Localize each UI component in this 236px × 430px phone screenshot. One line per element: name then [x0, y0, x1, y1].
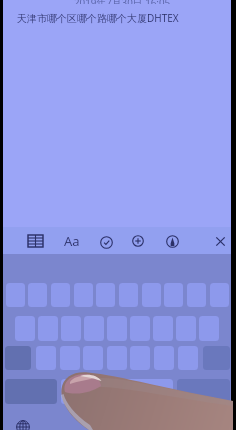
- button[interactable]: Aa: [61, 232, 83, 250]
- button[interactable]: Key: [96, 283, 115, 307]
- button[interactable]: Key: [83, 346, 103, 370]
- button[interactable]: Key: [107, 346, 127, 370]
- button[interactable]: Key: [28, 283, 47, 307]
- button[interactable]: Key: [38, 316, 58, 341]
- button[interactable]: Key: [51, 283, 70, 307]
- button[interactable]: Insert table: [26, 232, 44, 250]
- button[interactable]: Checklist: [97, 233, 115, 251]
- button[interactable]: Key: [210, 283, 229, 307]
- button[interactable]: Key: [6, 283, 25, 307]
- button[interactable]: Key: [154, 346, 174, 370]
- button[interactable]: Draw: [163, 232, 181, 250]
- button[interactable]: Key: [15, 316, 35, 341]
- button[interactable]: Key: [36, 346, 56, 370]
- button[interactable]: Key: [61, 316, 81, 341]
- button[interactable]: Key: [187, 283, 206, 307]
- button[interactable]: Key: [130, 346, 150, 370]
- button[interactable]: Change language: [16, 420, 30, 430]
- staticText: 2019年7月30日 16:05: [74, 0, 171, 4]
- button[interactable]: Key: [84, 316, 104, 341]
- button[interactable]: Key: [164, 283, 183, 307]
- button[interactable]: Key: [153, 316, 173, 341]
- button[interactable]: Key: [74, 283, 93, 307]
- button[interactable]: Key: [130, 316, 150, 341]
- button[interactable]: Enter: [177, 379, 230, 404]
- button[interactable]: Key: [142, 283, 161, 307]
- button[interactable]: Key: [60, 346, 80, 370]
- button[interactable]: Key: [199, 316, 219, 341]
- button[interactable]: Key: [178, 346, 198, 370]
- button[interactable]: Key: [107, 316, 127, 341]
- button[interactable]: Insert attachment: [129, 232, 147, 250]
- button[interactable]: Key: [176, 316, 196, 341]
- button[interactable]: Key: [119, 283, 138, 307]
- button[interactable]: Close keyboard: [211, 232, 229, 250]
- staticText: 天津市哪个区哪个路哪个大厦DHTEX: [17, 11, 179, 25]
- button[interactable]: Space: [61, 379, 173, 404]
- staticText: Aa: [64, 232, 80, 250]
